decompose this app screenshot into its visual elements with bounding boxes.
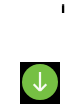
button[interactable]: i (58, 0, 68, 16)
button[interactable]: Download (22, 64, 58, 100)
staticText: i (58, 0, 68, 15)
